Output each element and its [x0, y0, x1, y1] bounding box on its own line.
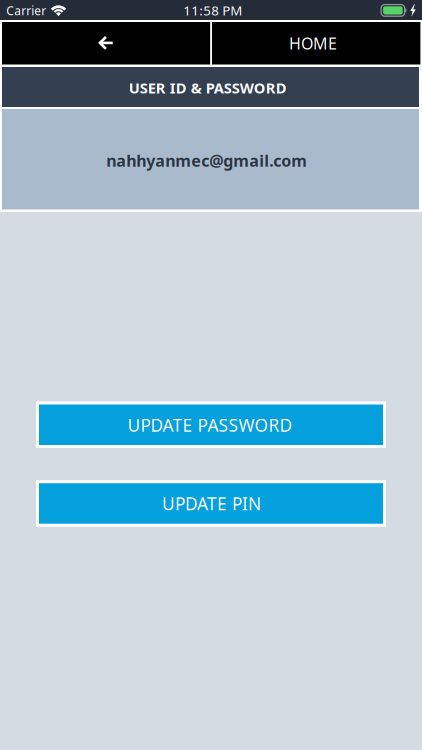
- staticText: USER ID & PASSWORD: [129, 78, 287, 97]
- staticText: nahhyanmec@gmail.com: [106, 150, 307, 171]
- button[interactable]: Back: [2, 22, 210, 64]
- staticText: UPDATE PASSWORD: [127, 413, 292, 436]
- staticText: UPDATE PIN: [162, 492, 261, 515]
- button[interactable]: UPDATE PASSWORD: [36, 401, 386, 448]
- button[interactable]: UPDATE PIN: [36, 480, 386, 527]
- button[interactable]: HOME: [212, 22, 420, 64]
- staticText: HOME: [289, 33, 337, 54]
- staticText: 11:58 PM: [183, 1, 242, 19]
- staticText: Carrier: [6, 3, 46, 18]
